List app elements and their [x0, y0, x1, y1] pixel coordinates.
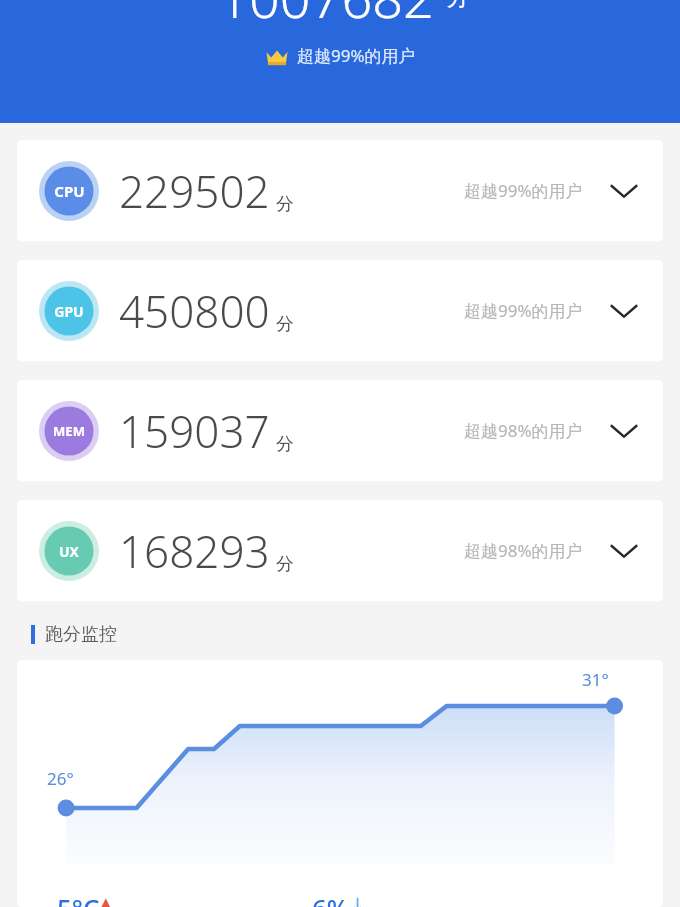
button[interactable]: CPU [17, 140, 663, 241]
button[interactable]: UX [17, 500, 663, 601]
staticText: 168293 [119, 521, 270, 581]
staticText: 超越98%的用户 [464, 539, 583, 562]
staticText: 26° [47, 767, 74, 790]
staticText: UX [59, 542, 79, 561]
staticText: 分 [276, 193, 294, 216]
staticText: 159037 [119, 401, 270, 461]
staticText: 跑分监控 [45, 623, 117, 646]
staticText: 超越99%的用户 [297, 44, 416, 67]
other: Expand UX details [607, 534, 641, 568]
staticText: 分 [446, 0, 470, 12]
other: Expand MEM details [607, 414, 641, 448]
staticText: GPU [54, 302, 84, 321]
staticText: 450800 [119, 281, 270, 341]
staticText: 229502 [119, 161, 270, 221]
staticText: 分 [276, 433, 294, 456]
staticText: 6% [312, 890, 350, 907]
staticText: CPU [54, 181, 85, 201]
other: Expand CPU details [607, 174, 641, 208]
staticText: MEM [53, 422, 85, 440]
staticText: ↓ [350, 894, 366, 907]
staticText: 分 [276, 313, 294, 336]
staticText: 5°C [57, 890, 100, 907]
staticText: 分 [276, 553, 294, 576]
staticText: ▲ [100, 894, 112, 907]
button[interactable]: GPU [17, 260, 663, 361]
button[interactable]: MEM [17, 380, 663, 481]
other: Expand GPU details [607, 294, 641, 328]
staticText: 超越98%的用户 [464, 419, 583, 442]
staticText: 1007682 [218, 0, 434, 34]
staticText: 31° [582, 668, 609, 691]
staticText: 超越99%的用户 [464, 179, 583, 202]
staticText: 超越99%的用户 [464, 299, 583, 322]
